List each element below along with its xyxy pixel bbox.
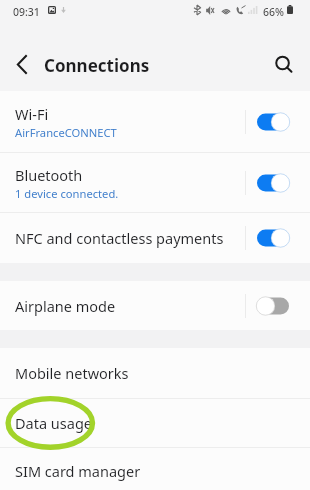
staticText: Bluetooth [15, 165, 83, 185]
button[interactable]: NFC and contactless payments [0, 213, 310, 263]
staticText: SIM card manager [15, 461, 141, 481]
button[interactable]: Mobile networks [0, 348, 310, 398]
button[interactable]: Airplane mode [0, 281, 310, 330]
staticText: Connections [44, 54, 150, 77]
button[interactable]: Bluetooth [0, 153, 310, 212]
button[interactable]: Wi-Fi [0, 91, 310, 152]
button[interactable]: SIM card manager [0, 448, 310, 490]
button[interactable]: On [256, 173, 290, 193]
staticText: NFC and contactless payments [15, 228, 224, 248]
button[interactable]: On [256, 112, 290, 132]
staticText: 1 device connected. [15, 186, 119, 201]
button[interactable]: Data usage [0, 399, 310, 447]
button[interactable]: On [256, 228, 290, 248]
staticText: 09:31 [13, 5, 40, 19]
staticText: Wi-Fi [15, 104, 49, 124]
staticText: Airplane mode [15, 296, 116, 316]
staticText: Data usage [15, 413, 92, 433]
staticText: 66% [263, 5, 284, 19]
button[interactable]: Off [256, 296, 290, 316]
staticText: AirFranceCONNECT [15, 125, 117, 140]
staticText: Mobile networks [15, 363, 129, 383]
button[interactable]: Navigate up [9, 52, 33, 76]
button[interactable]: Search [269, 50, 297, 78]
